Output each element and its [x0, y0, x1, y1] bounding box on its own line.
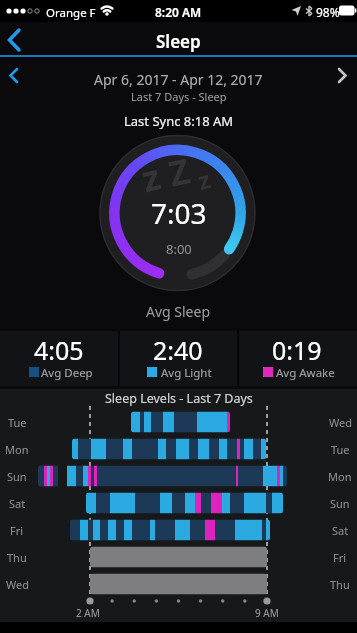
staticText: Avg Light	[161, 365, 212, 381]
staticText: Z	[164, 146, 195, 198]
staticText: Wed	[329, 415, 352, 430]
staticText: z	[194, 162, 214, 197]
staticText: Sleep Levels - Last 7 Days	[105, 390, 253, 407]
button[interactable]	[0, 24, 40, 56]
staticText: Fri	[333, 550, 347, 565]
staticText: Sat	[332, 523, 349, 538]
button[interactable]	[327, 62, 357, 90]
button[interactable]: 4:05	[0, 331, 118, 386]
staticText: Wed	[6, 577, 29, 592]
staticText: 2 AM	[76, 606, 100, 620]
staticText: 8:20 AM	[155, 4, 202, 20]
staticText: Thu	[330, 577, 350, 592]
staticText: 0:19	[272, 333, 322, 367]
staticText: Last 7 Days - Sleep	[131, 89, 227, 104]
staticText: 7:03	[151, 194, 207, 232]
staticText: Orange F	[46, 5, 96, 21]
staticText: Avg Sleep	[146, 302, 211, 321]
staticText: Tue	[8, 415, 27, 430]
staticText: Fri	[10, 523, 24, 538]
staticText: Sun	[7, 469, 27, 484]
staticText: 2:40	[153, 333, 203, 367]
staticText: 9 AM	[255, 606, 279, 620]
staticText: Mon	[5, 442, 29, 457]
staticText: Tue	[331, 442, 350, 457]
staticText: z	[136, 152, 166, 203]
staticText: 4:05	[34, 333, 84, 367]
button[interactable]: 2:40	[119, 331, 237, 386]
staticText: Avg Deep	[41, 365, 93, 381]
staticText: 98%	[316, 4, 340, 20]
staticText: Mon	[328, 469, 352, 484]
staticText: Avg Awake	[276, 365, 335, 381]
staticText: 8:00	[166, 240, 192, 258]
staticText: Thu	[7, 550, 27, 565]
staticText: Sleep	[156, 30, 201, 53]
button[interactable]: 0:19	[238, 331, 356, 386]
staticText: Last Sync 8:18 AM	[124, 112, 234, 130]
staticText: Sat	[9, 496, 26, 511]
staticText: Sun	[330, 496, 350, 511]
staticText: Apr 6, 2017 - Apr 12, 2017	[94, 70, 263, 89]
button[interactable]	[0, 62, 30, 90]
